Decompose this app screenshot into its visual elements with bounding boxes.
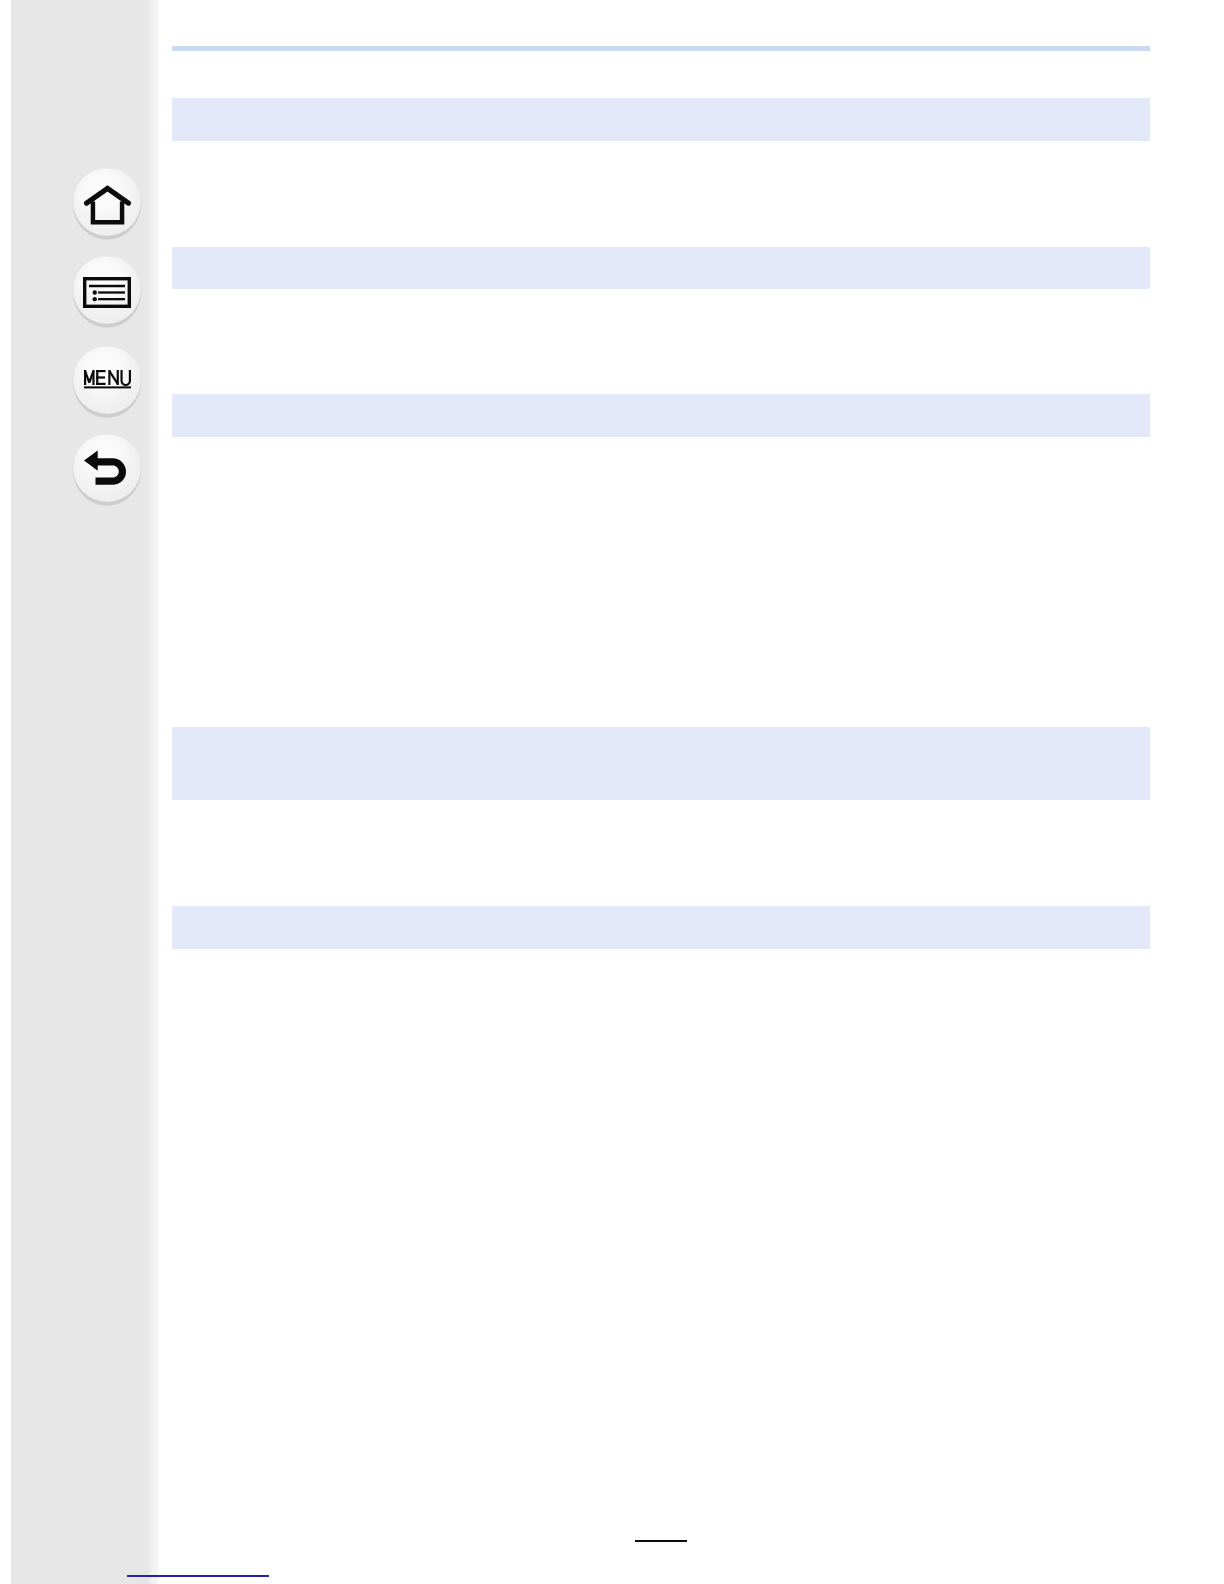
button[interactable]: Menu: [72, 345, 142, 415]
button[interactable]: Back: [72, 433, 142, 503]
button[interactable]: Home: [72, 167, 142, 237]
button[interactable]: Table of contents: [72, 255, 142, 325]
